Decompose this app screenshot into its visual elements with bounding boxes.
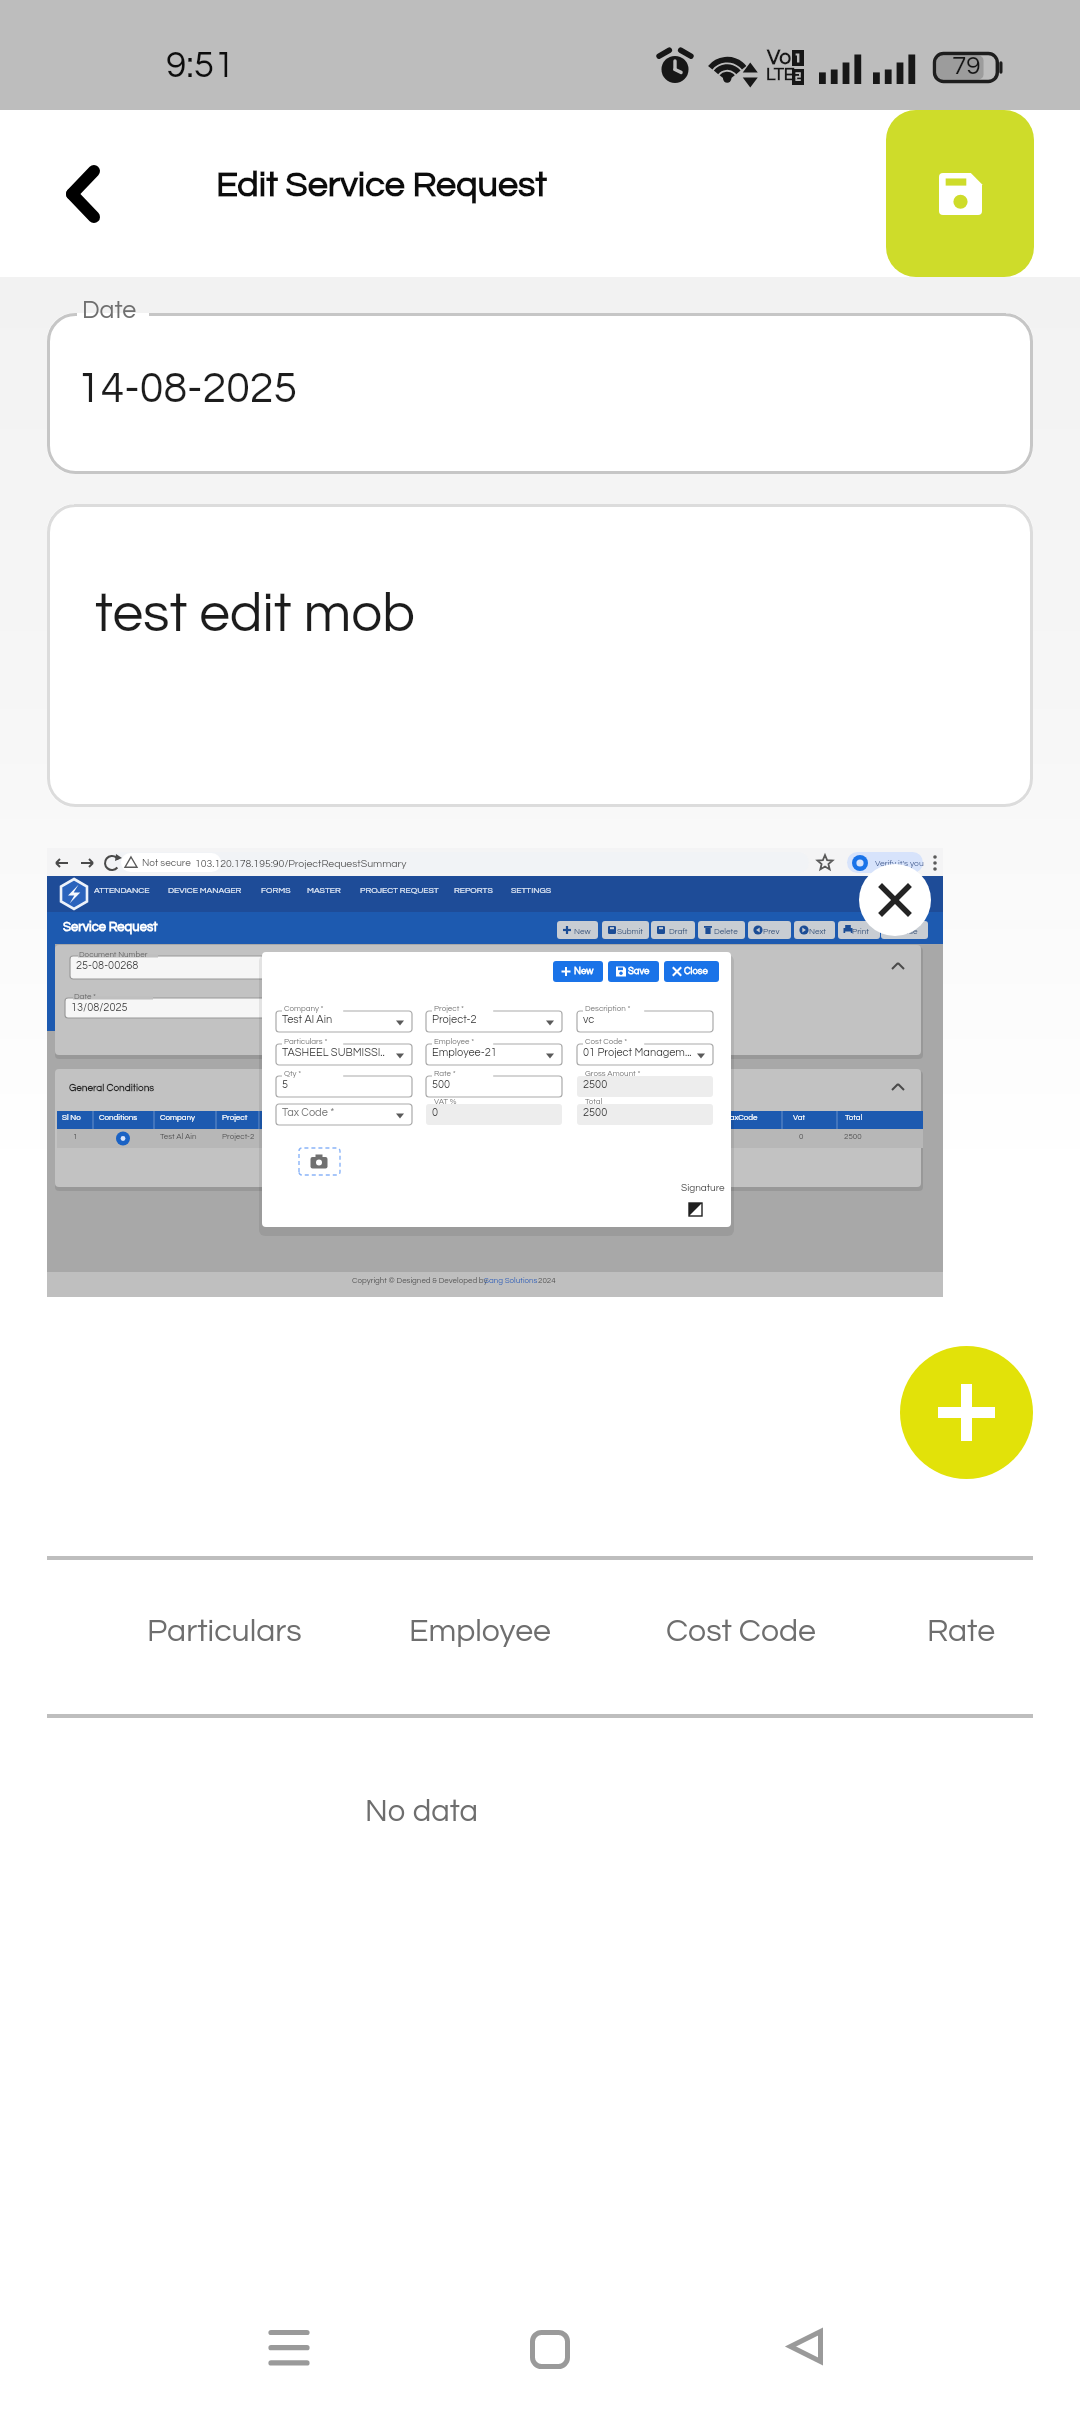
staticText: Signature (681, 1183, 725, 1193)
staticText: Cost Code * (585, 1037, 628, 1045)
staticText: Conditions (99, 1113, 138, 1121)
staticText: SETTINGS (511, 886, 552, 895)
staticText: Cost Code (666, 1615, 816, 1648)
staticText: 500 (432, 1079, 451, 1090)
staticText: Project-2 (222, 1132, 255, 1140)
staticText: 13/08/2025 (71, 1002, 128, 1013)
staticText: Rate * (434, 1069, 456, 1077)
staticText: Employee-21 (432, 1047, 497, 1058)
staticText: Particulars (147, 1615, 302, 1648)
staticText: 25-08-00268 (76, 960, 139, 971)
staticText: 79 (952, 53, 981, 80)
staticText: Company (160, 1113, 195, 1121)
staticText: Vo (767, 47, 792, 69)
button[interactable]: Remove image (859, 864, 931, 936)
staticText: 2024 (538, 1276, 556, 1284)
staticText: 2500 (583, 1107, 608, 1118)
staticText: Sang Solutions (484, 1276, 538, 1284)
staticText: 14-08-2025 (77, 367, 298, 411)
staticText: Close (897, 927, 918, 935)
staticText: Employee (409, 1615, 551, 1648)
staticText: TASHEEL SUBMISSI.. (282, 1047, 385, 1058)
staticText: Rate (927, 1615, 996, 1648)
staticText: PROJECT REQUEST (360, 886, 439, 895)
staticText: 5 (282, 1079, 289, 1090)
staticText: TaxCode (726, 1113, 758, 1121)
button[interactable]: Save (886, 110, 1034, 277)
staticText: New (574, 927, 591, 935)
staticText: 2500 (583, 1079, 608, 1090)
staticText: Close (684, 966, 708, 976)
staticText: Date (82, 297, 137, 323)
staticText: Test Al Ain (282, 1014, 333, 1025)
button[interactable]: Recent apps (239, 2297, 339, 2397)
staticText: Prev (763, 927, 780, 935)
button[interactable]: Back (35, 146, 131, 242)
staticText: Submit (617, 927, 643, 935)
button[interactable]: Back (755, 2296, 855, 2396)
staticText: Date * (74, 992, 97, 1000)
button[interactable]: Home (500, 2299, 600, 2399)
staticText: Project (222, 1113, 248, 1121)
staticText: Draft (669, 927, 688, 935)
staticText: Project * (434, 1004, 464, 1012)
staticText: test edit mob (95, 586, 415, 643)
staticText: Document Number (79, 950, 148, 958)
staticText: 2500 (844, 1132, 862, 1140)
staticText: Print (852, 927, 869, 935)
staticText: Copyright © Designed & Developed by (352, 1276, 488, 1284)
staticText: 0 (799, 1132, 804, 1140)
staticText: New (574, 966, 594, 976)
staticText: 0 (432, 1107, 439, 1118)
staticText: Not secure (142, 858, 191, 868)
staticText: ATTENDANCE (94, 886, 150, 895)
staticText: Employee * (434, 1037, 475, 1045)
staticText: 1 (73, 1132, 78, 1140)
staticText: MASTER (307, 886, 341, 895)
staticText: Test Al Ain (160, 1132, 197, 1140)
staticText: vc (583, 1014, 595, 1025)
staticText: Total (845, 1113, 863, 1121)
staticText: Particulars * (284, 1037, 328, 1045)
staticText: Edit Service Request (216, 166, 548, 203)
staticText: Service Request (63, 920, 158, 933)
staticText: Description * (585, 1004, 631, 1012)
staticText: Sl No (62, 1113, 81, 1121)
staticText: Save (628, 966, 650, 976)
staticText: 01 Project Managem... (583, 1047, 692, 1058)
staticText: Qty * (284, 1069, 302, 1077)
staticText: No data (365, 1796, 478, 1828)
staticText: Delete (714, 927, 738, 935)
staticText: Total (585, 1097, 603, 1105)
staticText: Verify it's you (875, 859, 924, 868)
staticText: DEVICE MANAGER (168, 886, 242, 895)
staticText: FORMS (261, 886, 291, 895)
staticText: Company * (284, 1004, 324, 1012)
staticText: Vat (793, 1113, 806, 1121)
staticText: VAT % (434, 1097, 457, 1105)
button[interactable]: Add (900, 1346, 1033, 1479)
staticText: 103.120.178.195:90/ProjectRequestSummary (195, 858, 407, 869)
staticText: 9:51 (166, 47, 235, 85)
staticText: Gross Amount * (585, 1069, 641, 1077)
staticText: General Conditions (69, 1083, 155, 1093)
staticText: REPORTS (454, 886, 493, 895)
staticText: Project-2 (432, 1014, 477, 1025)
staticText: LTE (766, 65, 795, 84)
staticText: Tax Code * (282, 1107, 335, 1118)
staticText: Next (809, 927, 827, 935)
